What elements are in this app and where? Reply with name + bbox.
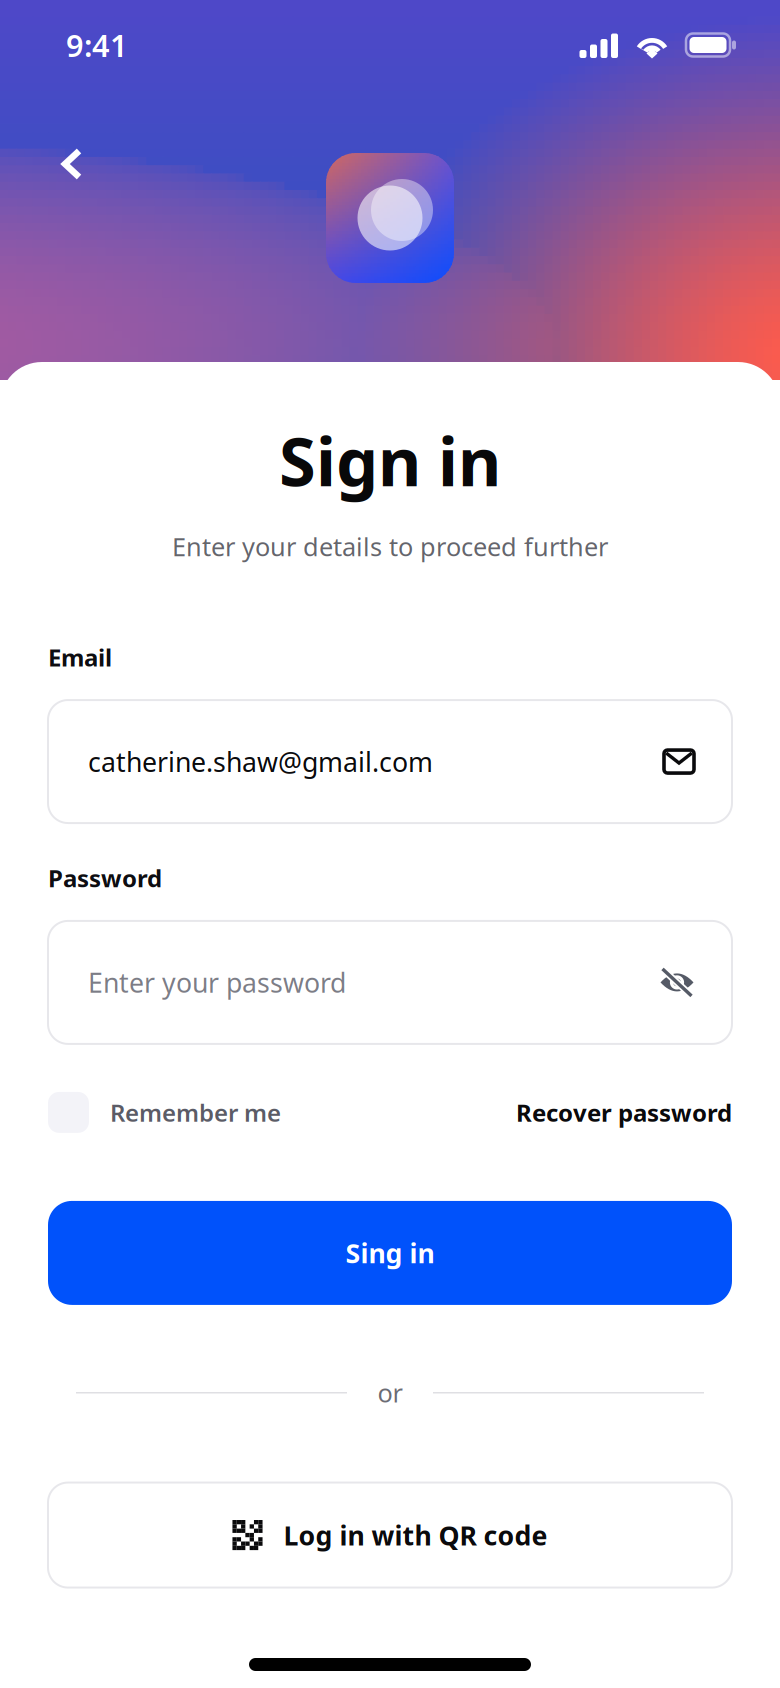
- staticText: Log in with QR code: [284, 1517, 548, 1553]
- button[interactable]: Remember me: [48, 1092, 281, 1133]
- staticText: Remember me: [110, 1096, 281, 1128]
- staticText: Recover password: [516, 1096, 732, 1128]
- staticText: Email: [48, 641, 112, 673]
- button[interactable]: Recover password: [516, 1096, 732, 1128]
- staticText: Sing in: [345, 1235, 434, 1271]
- staticText: catherine.shaw@gmail.com: [88, 744, 433, 779]
- staticText: Enter your details to proceed further: [172, 529, 608, 563]
- button[interactable]: Sing in: [48, 1201, 732, 1305]
- button[interactable]: Back: [39, 131, 105, 197]
- staticText: Enter your password: [88, 965, 346, 1000]
- staticText: 9:41: [66, 25, 128, 65]
- staticText: Sign in: [279, 416, 501, 504]
- staticText: Password: [48, 862, 162, 894]
- button[interactable]: Log in with QR code: [48, 1483, 732, 1588]
- staticText: or: [377, 1376, 402, 1409]
